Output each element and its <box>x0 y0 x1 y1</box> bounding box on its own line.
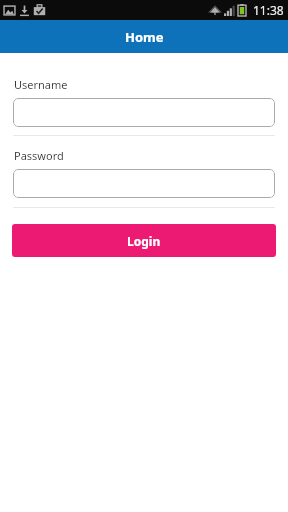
other: Signal <box>224 5 235 16</box>
button[interactable] <box>13 169 275 198</box>
other: Battery <box>238 4 246 16</box>
other: Screenshot <box>3 4 16 17</box>
button[interactable] <box>13 98 275 127</box>
staticText: Password <box>14 148 64 163</box>
other: Wi-Fi <box>209 4 221 16</box>
other: Download <box>18 4 31 17</box>
staticText: 11:38 <box>253 2 284 18</box>
button[interactable]: Login <box>12 224 276 257</box>
other: App install <box>33 4 46 17</box>
staticText: Username <box>14 77 68 92</box>
staticText: Home <box>125 28 164 46</box>
staticText: Login <box>127 233 161 249</box>
